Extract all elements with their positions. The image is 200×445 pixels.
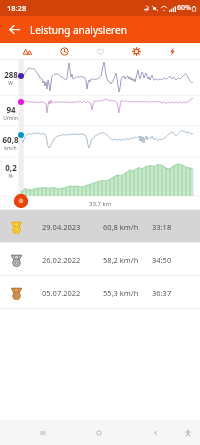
staticText: 05.07.2022 [42, 288, 81, 298]
button[interactable]: 05.07.2022 [0, 276, 200, 309]
button[interactable]: Elevation [9, 43, 46, 60]
staticText: 34:50 [152, 255, 172, 265]
button[interactable]: Heart rate [82, 43, 118, 60]
staticText: 29.04.2023 [42, 222, 81, 232]
button[interactable]: Recent apps [32, 422, 54, 444]
staticText: Leistung analysieren [30, 23, 127, 37]
button[interactable]: Cadence [118, 43, 154, 60]
staticText: 33:18 [152, 222, 172, 232]
staticText: % [8, 173, 13, 180]
staticText: 55,3 km/h [103, 288, 139, 298]
staticText: km/h [4, 145, 17, 152]
button[interactable]: Duration [46, 43, 82, 60]
staticText: 33,7 km [89, 200, 112, 208]
staticText: 26.02.2022 [42, 255, 81, 265]
staticText: 94 [6, 104, 16, 115]
button[interactable]: 29.04.2023 [0, 210, 200, 243]
staticText: 0,2 [5, 162, 17, 173]
staticText: U/min [3, 115, 18, 122]
staticText: W [8, 80, 13, 87]
staticText: 60% [177, 3, 191, 13]
button[interactable]: Power [154, 43, 190, 60]
staticText: 18:28 [7, 3, 27, 13]
staticText: 36:37 [152, 288, 172, 298]
button[interactable]: 26.02.2022 [0, 243, 200, 276]
button[interactable]: Back [0, 16, 28, 43]
staticText: 288 [4, 69, 18, 80]
staticText: 58,2 km/h [103, 255, 139, 265]
button[interactable]: Home [88, 422, 110, 444]
button[interactable]: Back [145, 422, 167, 444]
staticText: 60,8 [2, 134, 19, 145]
staticText: 60,8 km/h [103, 222, 139, 232]
button[interactable]: Accessibility [177, 422, 199, 444]
